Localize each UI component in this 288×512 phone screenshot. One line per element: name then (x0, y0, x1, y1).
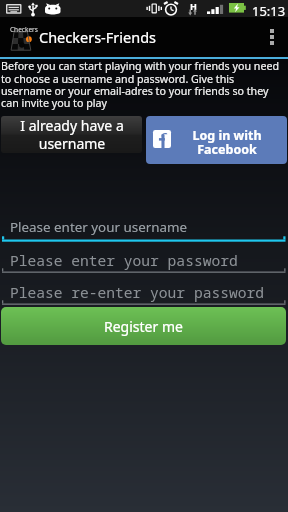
button[interactable]: I already have a username (1, 116, 142, 153)
staticText: Register me (104, 317, 183, 336)
button[interactable]: Please enter your password (0, 248, 288, 274)
button[interactable]: Log in with Facebook (146, 116, 287, 164)
button[interactable]: Please enter your username (0, 216, 288, 242)
staticText: Please enter your username (10, 218, 188, 236)
staticText: Log in with Facebook (177, 127, 277, 157)
staticText: Checkers (10, 25, 38, 34)
staticText: 15:13 (252, 2, 286, 19)
staticText: Please enter your password (10, 250, 238, 270)
staticText: Before you can start playing with your f… (1, 59, 287, 110)
staticText: I already have a username (20, 116, 124, 153)
button[interactable]: More options (256, 17, 288, 57)
staticText: Please re-enter your password (10, 282, 264, 302)
button[interactable]: Register me (1, 307, 286, 345)
staticText: Checkers-Friends (39, 27, 157, 47)
staticText: H (190, 0, 197, 12)
button[interactable]: Please re-enter your password (0, 280, 288, 306)
